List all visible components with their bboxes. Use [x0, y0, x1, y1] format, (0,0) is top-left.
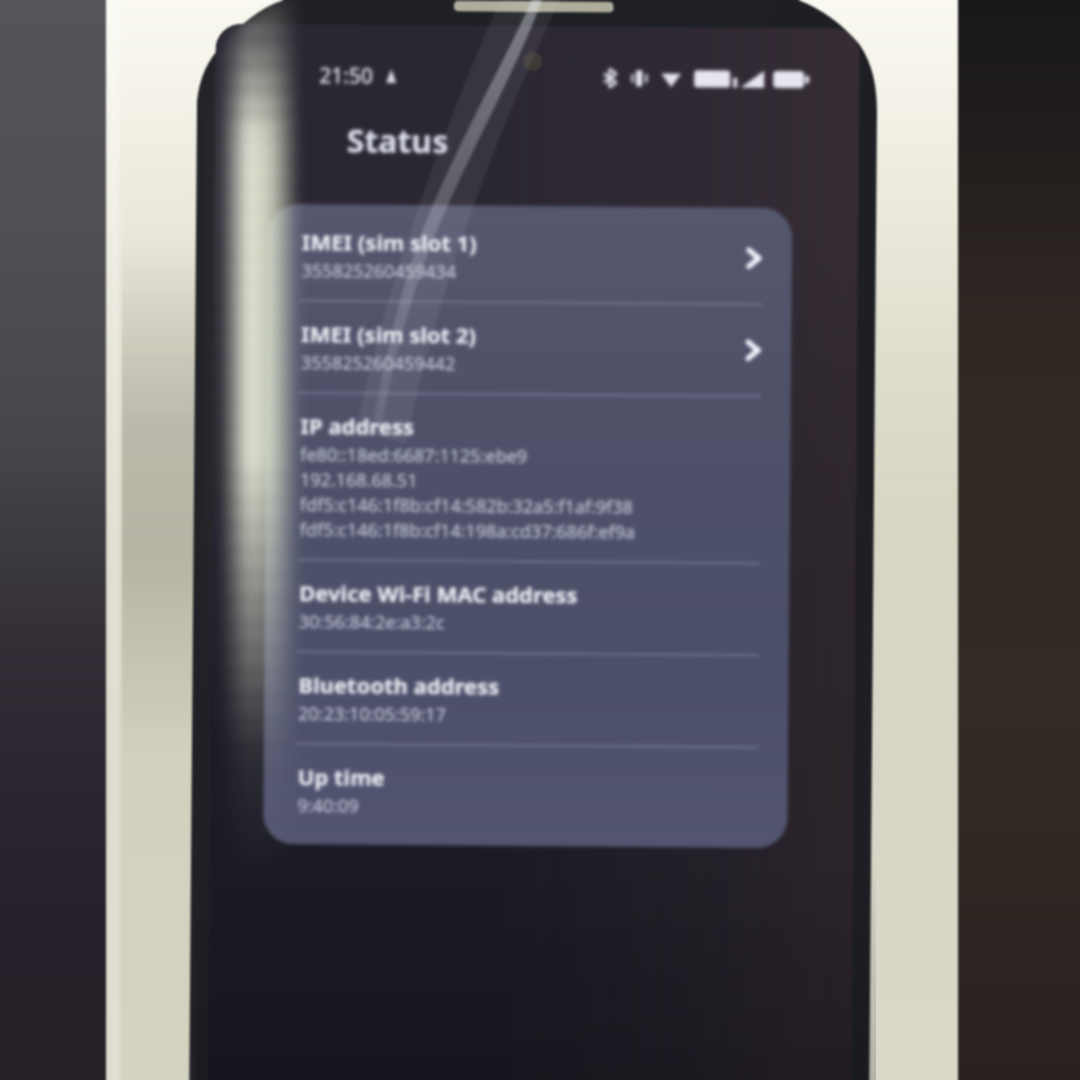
- staticText: Status: [346, 119, 449, 163]
- other: Open details: [745, 246, 762, 271]
- button[interactable]: Up time: [263, 744, 788, 839]
- button[interactable]: IP address: [265, 393, 791, 563]
- staticText: Device Wi-Fi MAC address: [299, 577, 578, 609]
- staticText: 9:40:09: [297, 793, 360, 819]
- other: Open details: [744, 338, 761, 363]
- staticText: IP address: [300, 410, 415, 441]
- staticText: 20:23:10:05:59:17: [298, 701, 446, 727]
- staticText: fdf5:c146:1f8b:cf14:198a:cd37:686f:ef9a: [300, 517, 636, 545]
- staticText: 192.168.68.51: [300, 467, 418, 493]
- staticText: Up time: [298, 761, 385, 792]
- staticText: IMEI (sim slot 2): [301, 318, 476, 350]
- staticText: 355825260459434: [302, 258, 457, 284]
- staticText: 355825260459442: [301, 350, 456, 376]
- button[interactable]: IMEI (sim slot 1): [267, 209, 792, 304]
- staticText: IMEI (sim slot 1): [302, 226, 477, 258]
- button[interactable]: IMEI (sim slot 2): [267, 301, 791, 396]
- staticText: fe80::18ed:6687:1125:ebe9: [300, 442, 527, 469]
- staticText: fdf5:c146:1f8b:cf14:582b:32a5:f1af:9f38: [300, 492, 634, 520]
- button[interactable]: Device Wi-Fi MAC address: [265, 560, 789, 655]
- staticText: Bluetooth address: [298, 669, 499, 701]
- button[interactable]: Bluetooth address: [264, 652, 789, 747]
- staticText: 21:50: [319, 61, 373, 91]
- staticText: 30:56:84:2e:a3:2c: [299, 609, 445, 635]
